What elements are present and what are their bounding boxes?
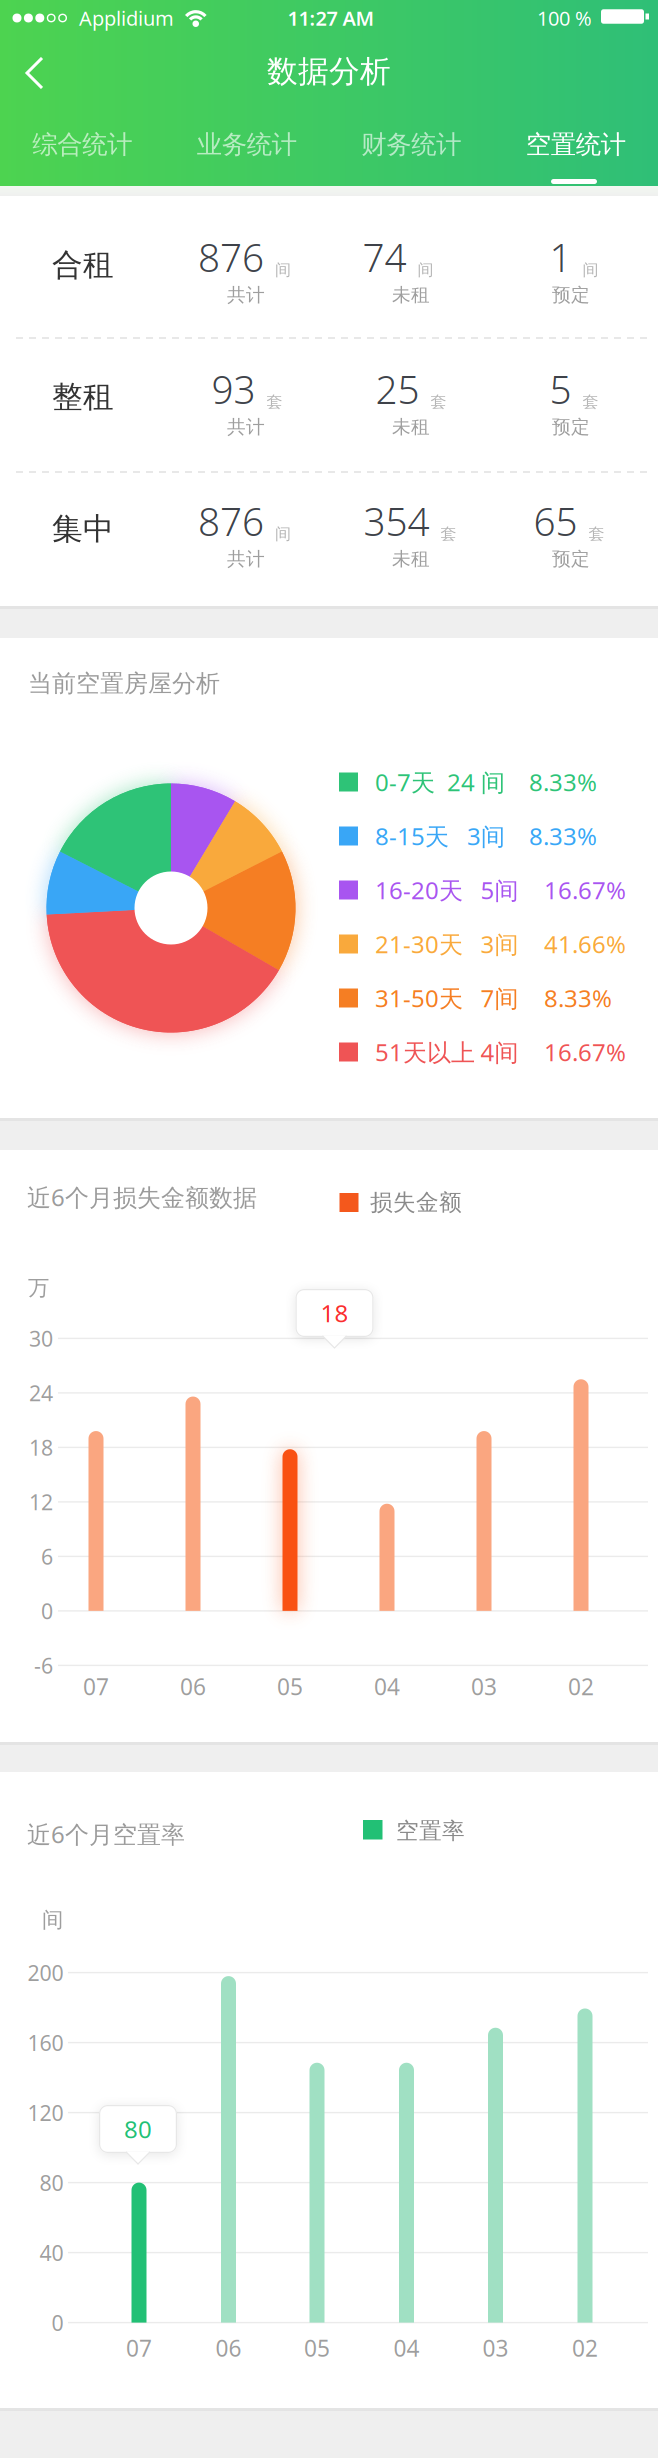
button[interactable]: 空置统计: [493, 116, 658, 172]
staticText: 近6个月损失金额数据: [27, 1181, 257, 1213]
staticText: 0: [41, 1597, 53, 1625]
staticText: 8.33%: [529, 820, 597, 852]
staticText: 套: [588, 524, 604, 544]
staticText: 05: [304, 2333, 330, 2363]
staticText: -6: [34, 1651, 53, 1679]
staticText: 财务统计: [361, 129, 461, 160]
staticText: 160: [27, 2028, 63, 2057]
staticText: 876: [198, 495, 264, 547]
staticText: 74: [362, 231, 406, 283]
button[interactable]: 综合统计: [0, 116, 164, 172]
staticText: 93: [211, 363, 255, 415]
staticText: 100 %: [537, 5, 592, 31]
staticText: 共计: [227, 547, 265, 570]
staticText: 7间: [480, 982, 518, 1014]
staticText: 共计: [227, 415, 265, 438]
staticText: 02: [572, 2333, 598, 2363]
staticText: 未租: [392, 547, 430, 570]
staticText: 空置统计: [526, 129, 626, 160]
staticText: 未租: [392, 415, 430, 438]
staticText: 40: [39, 2238, 63, 2267]
staticText: Applidium: [79, 5, 174, 31]
staticText: 0-7天: [375, 766, 435, 798]
staticText: 预定: [552, 415, 590, 438]
staticText: 套: [266, 392, 282, 412]
staticText: 03: [482, 2333, 508, 2363]
staticText: 1: [549, 231, 571, 283]
staticText: 25: [375, 363, 419, 415]
staticText: 套: [430, 392, 446, 412]
staticText: 4间: [480, 1036, 518, 1068]
staticText: 8.33%: [529, 766, 597, 798]
staticText: 综合统计: [32, 129, 132, 160]
button[interactable]: Back: [16, 51, 52, 95]
staticText: 06: [180, 1671, 206, 1701]
button[interactable]: 财务统计: [329, 116, 493, 172]
staticText: 合租: [52, 246, 114, 284]
staticText: 65: [533, 495, 577, 547]
staticText: 31-50天: [375, 982, 463, 1014]
staticText: 共计: [227, 283, 265, 306]
staticText: 30: [29, 1324, 53, 1352]
staticText: 12: [29, 1488, 53, 1516]
staticText: 整租: [52, 378, 114, 416]
staticText: 02: [568, 1671, 594, 1701]
staticText: 16.67%: [544, 874, 626, 906]
staticText: 24 间: [447, 766, 505, 798]
staticText: 预定: [552, 283, 590, 306]
staticText: 18: [29, 1433, 53, 1461]
staticText: 07: [83, 1671, 109, 1701]
staticText: 80: [39, 2168, 63, 2197]
staticText: 06: [215, 2333, 241, 2363]
staticText: 损失金额: [370, 1189, 462, 1216]
staticText: 近6个月空置率: [27, 1818, 185, 1850]
staticText: 11:27 AM: [287, 5, 374, 31]
staticText: 04: [393, 2333, 419, 2363]
staticText: 万: [28, 1275, 49, 1301]
staticText: 876: [198, 231, 264, 283]
staticText: 120: [27, 2098, 63, 2127]
staticText: 18: [320, 1297, 348, 1329]
staticText: 间: [582, 260, 598, 280]
staticText: 05: [277, 1671, 303, 1701]
staticText: 数据分析: [267, 53, 391, 90]
staticText: 80: [124, 2113, 152, 2145]
staticText: 04: [374, 1671, 400, 1701]
staticText: 套: [440, 524, 456, 544]
staticText: 16-20天: [375, 874, 463, 906]
staticText: 0: [51, 2308, 63, 2337]
staticText: 41.66%: [544, 928, 626, 960]
staticText: 8.33%: [544, 982, 612, 1014]
staticText: 间: [275, 524, 291, 544]
staticText: 16.67%: [544, 1036, 626, 1068]
staticText: 200: [27, 1958, 63, 1987]
button[interactable]: 业务统计: [164, 116, 329, 172]
staticText: 5: [549, 363, 571, 415]
staticText: 6: [41, 1542, 53, 1570]
staticText: 当前空置房屋分析: [28, 669, 220, 698]
staticText: 间: [417, 260, 433, 280]
staticText: 空置率: [396, 1817, 465, 1845]
staticText: 集中: [52, 510, 114, 548]
staticText: 8-15天: [375, 820, 449, 852]
staticText: 24: [29, 1379, 53, 1407]
staticText: 3间: [467, 820, 505, 852]
staticText: 套: [582, 392, 598, 412]
staticText: 03: [471, 1671, 497, 1701]
staticText: 07: [126, 2333, 152, 2363]
staticText: 未租: [392, 283, 430, 306]
staticText: 5间: [480, 874, 518, 906]
staticText: 业务统计: [197, 129, 297, 160]
staticText: 间: [42, 1907, 63, 1933]
staticText: 预定: [552, 547, 590, 570]
staticText: 3间: [480, 928, 518, 960]
staticText: 51天以上: [375, 1036, 475, 1068]
staticText: 354: [363, 495, 429, 547]
staticText: 间: [275, 260, 291, 280]
staticText: 21-30天: [375, 928, 463, 960]
